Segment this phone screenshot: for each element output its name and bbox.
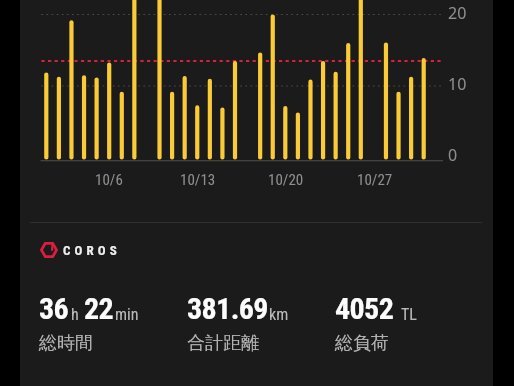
staticText: 22	[84, 291, 114, 326]
staticText: 10/20	[268, 171, 304, 189]
button[interactable]: 381.69	[187, 291, 289, 355]
staticText: 10/13	[180, 171, 216, 189]
staticText: 4052	[335, 291, 394, 326]
staticText: h	[71, 305, 79, 324]
staticText: km	[269, 305, 289, 324]
staticText: 20	[448, 2, 467, 24]
staticText: 合計距離	[187, 332, 259, 355]
staticText: 36	[39, 291, 69, 326]
button[interactable]: COROS	[40, 241, 121, 259]
staticText: 381.69	[187, 291, 268, 326]
staticText: 10/27	[357, 171, 393, 189]
staticText: min	[115, 305, 139, 324]
button[interactable]: 36	[39, 291, 139, 355]
staticText: 10	[448, 73, 467, 95]
staticText: 10/6	[95, 171, 123, 189]
staticText: 総負荷	[335, 332, 389, 355]
staticText: 総時間	[39, 332, 93, 355]
staticText: COROS	[63, 243, 121, 258]
button[interactable]: 4052	[335, 291, 417, 355]
staticText: 0	[448, 144, 458, 166]
staticText: TL	[401, 305, 417, 324]
